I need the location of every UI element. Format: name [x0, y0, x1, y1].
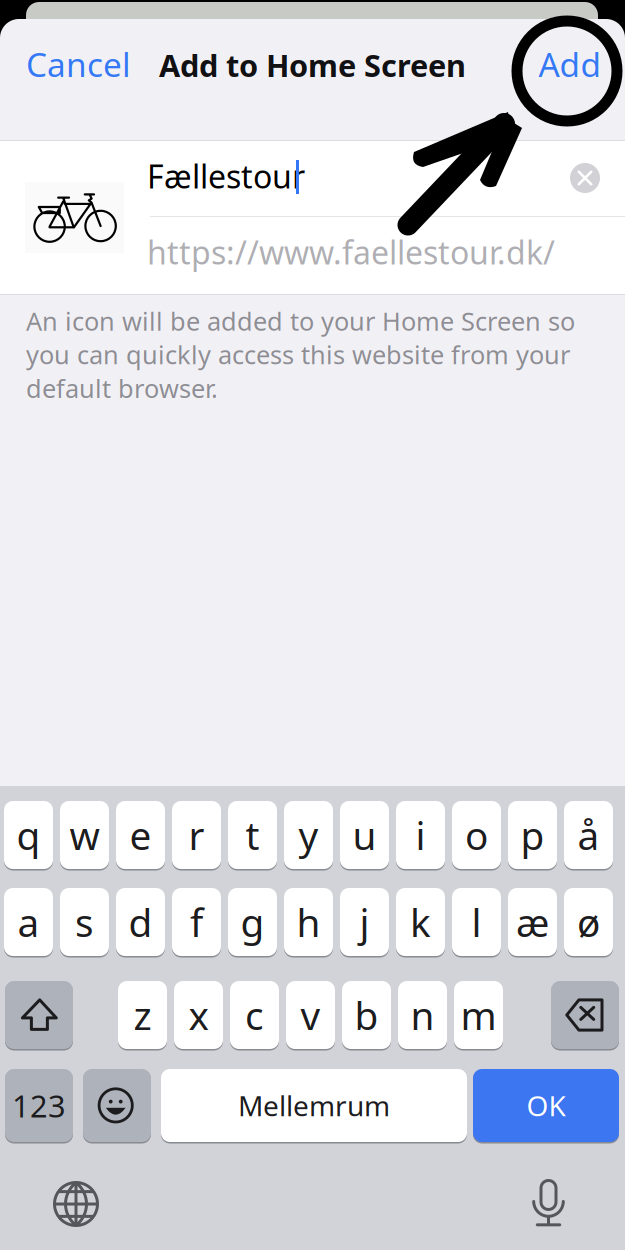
staticText: An icon will be added to your Home Scree… — [26, 304, 575, 405]
staticText: l — [471, 896, 481, 948]
staticText: Fællestour — [147, 155, 305, 197]
staticText: m — [460, 989, 496, 1041]
button[interactable]: s — [60, 888, 109, 958]
staticText: h — [296, 896, 320, 948]
button[interactable]: f — [172, 888, 221, 958]
button[interactable]: l — [452, 888, 501, 958]
staticText: a — [17, 896, 39, 948]
button[interactable]: n — [398, 981, 447, 1051]
button[interactable]: z — [118, 981, 167, 1051]
staticText: Mellemrum — [238, 1087, 390, 1124]
button[interactable]: u — [340, 801, 389, 871]
staticText: g — [240, 896, 264, 948]
staticText: n — [410, 989, 434, 1041]
staticText: Add — [538, 42, 601, 86]
button[interactable]: w — [60, 801, 109, 871]
staticText: t — [245, 809, 259, 861]
staticText: Add to Home Screen — [159, 45, 466, 85]
staticText: Cancel — [26, 42, 131, 86]
staticText: u — [352, 809, 376, 861]
staticText: æ — [516, 896, 549, 948]
button[interactable]: Add — [520, 44, 620, 84]
button[interactable]: OK — [473, 1069, 619, 1144]
button[interactable]: p — [508, 801, 557, 871]
button[interactable]: t — [228, 801, 277, 871]
staticText: ø — [577, 896, 600, 948]
staticText: z — [133, 989, 151, 1041]
button[interactable]: d — [116, 888, 165, 958]
button[interactable]: Next keyboard — [48, 1176, 104, 1232]
button[interactable]: c — [230, 981, 279, 1051]
button[interactable]: e — [116, 801, 165, 871]
button[interactable]: Mellemrum — [161, 1069, 467, 1144]
staticText: s — [75, 896, 94, 948]
button[interactable]: Dictate — [521, 1176, 577, 1232]
button[interactable]: o — [452, 801, 501, 871]
button[interactable]: i — [396, 801, 445, 871]
staticText: v — [300, 989, 320, 1041]
button[interactable]: a — [4, 888, 53, 958]
staticText: q — [16, 809, 40, 861]
button[interactable]: Cancel — [26, 44, 166, 84]
staticText: o — [465, 809, 488, 861]
staticText: k — [410, 896, 431, 948]
button[interactable]: m — [454, 981, 503, 1051]
button[interactable]: Clear text — [562, 155, 608, 201]
button[interactable]: Emoji — [83, 1069, 151, 1144]
button[interactable]: j — [340, 888, 389, 958]
button[interactable]: r — [172, 801, 221, 871]
staticText: 123 — [12, 1085, 66, 1126]
button[interactable]: ø — [564, 888, 613, 958]
staticText: f — [190, 896, 203, 948]
staticText: y — [298, 809, 318, 861]
staticText: r — [188, 809, 204, 861]
staticText: p — [520, 809, 544, 861]
staticText: x — [188, 989, 208, 1041]
button[interactable]: k — [396, 888, 445, 958]
button[interactable]: v — [286, 981, 335, 1051]
button[interactable]: q — [4, 801, 53, 871]
staticText: j — [359, 896, 369, 948]
staticText: OK — [526, 1087, 565, 1124]
staticText: e — [129, 809, 151, 861]
button[interactable]: y — [284, 801, 333, 871]
staticText: i — [415, 809, 425, 861]
button[interactable]: å — [564, 801, 613, 871]
staticText: https://www.faellestour.dk/ — [147, 231, 555, 273]
button[interactable]: h — [284, 888, 333, 958]
button[interactable]: Shift — [5, 981, 73, 1051]
staticText: w — [69, 809, 99, 861]
button[interactable]: g — [228, 888, 277, 958]
button[interactable]: Delete — [551, 981, 619, 1051]
staticText: c — [245, 989, 264, 1041]
button[interactable]: x — [174, 981, 223, 1051]
button[interactable]: æ — [508, 888, 557, 958]
staticText: b — [354, 989, 378, 1041]
button[interactable]: b — [342, 981, 391, 1051]
staticText: å — [577, 809, 599, 861]
staticText: d — [128, 896, 152, 948]
button[interactable]: 123 — [5, 1069, 73, 1144]
